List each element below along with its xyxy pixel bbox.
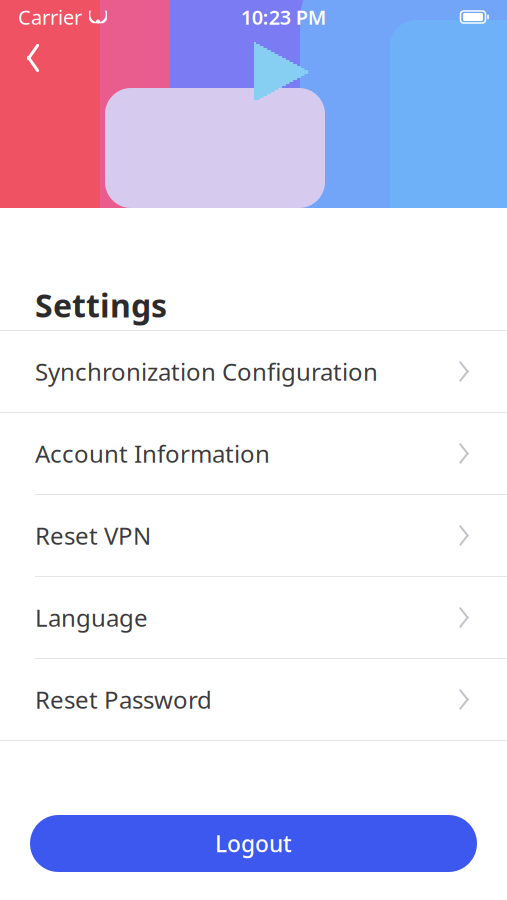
staticText: Account Information [35, 438, 270, 469]
button[interactable]: Reset VPN [0, 495, 507, 576]
button[interactable]: Language [0, 577, 507, 658]
staticText: Synchronization Configuration [35, 356, 378, 387]
button[interactable]: Reset Password [0, 659, 507, 740]
button[interactable]: Back [6, 33, 60, 83]
button[interactable]: Account Information [0, 413, 507, 494]
staticText: Carrier [18, 4, 82, 30]
staticText: Reset VPN [35, 520, 151, 551]
staticText: Reset Password [35, 684, 212, 715]
staticText: Settings [35, 284, 167, 326]
button[interactable]: Logout [30, 815, 477, 872]
staticText: Language [35, 602, 148, 633]
staticText: Logout [215, 828, 292, 858]
button[interactable]: Synchronization Configuration [0, 331, 507, 412]
staticText: 10:23 PM [241, 4, 327, 30]
